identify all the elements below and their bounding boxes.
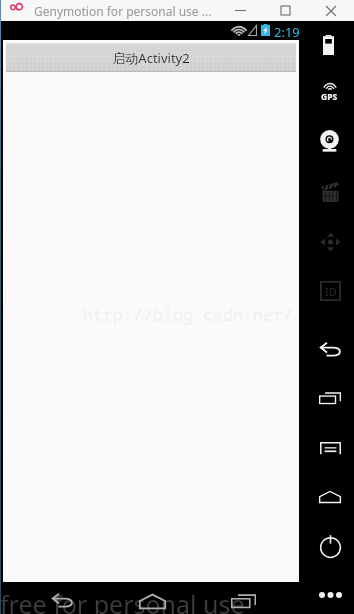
button[interactable]: Menu (302, 432, 354, 464)
button[interactable]: Home (130, 585, 174, 614)
button[interactable]: Recents (221, 585, 265, 614)
button[interactable]: GPS (302, 77, 354, 109)
button[interactable]: Record (302, 176, 354, 208)
button[interactable]: Minimize (218, 0, 263, 21)
staticText: ID (325, 284, 337, 299)
button[interactable]: Recents (302, 382, 354, 414)
button[interactable]: Home (302, 481, 354, 513)
button[interactable]: D-pad (302, 226, 354, 258)
staticText: GPS (321, 91, 338, 103)
button[interactable]: Maximize (263, 0, 308, 21)
button[interactable]: Battery (302, 29, 354, 61)
staticText: free for personal use (0, 587, 245, 614)
button[interactable]: More (302, 579, 354, 611)
staticText: Genymotion for personal use ... (34, 3, 212, 19)
staticText: 启动Activity2 (112, 49, 190, 67)
staticText: http://blog.csdn.net/ (83, 304, 294, 326)
staticText: 2:19 (274, 23, 300, 41)
button[interactable]: Close (308, 0, 353, 21)
button[interactable]: Back (302, 334, 354, 366)
button[interactable]: Camera (302, 126, 354, 158)
button[interactable]: Power (302, 529, 354, 561)
button[interactable]: Back (40, 585, 84, 614)
button[interactable]: 启动Activity2 (6, 43, 296, 72)
button[interactable]: ID (302, 275, 354, 307)
